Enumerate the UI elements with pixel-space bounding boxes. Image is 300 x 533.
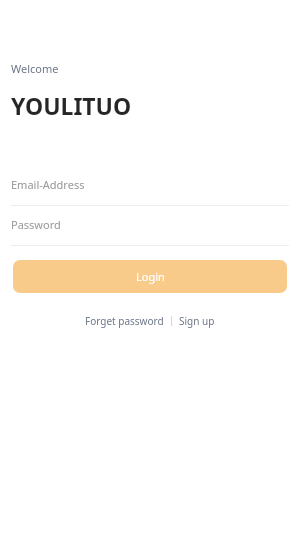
button[interactable]: Sign up: [179, 314, 215, 328]
button[interactable]: Forget password: [85, 314, 164, 328]
staticText: Sign up: [179, 314, 215, 328]
staticText: Welcome: [11, 61, 59, 76]
staticText: Login: [136, 269, 165, 284]
staticText: Forget password: [85, 314, 164, 328]
button[interactable]: Login: [13, 260, 287, 293]
staticText: Email-Address: [11, 177, 85, 192]
staticText: Password: [11, 217, 61, 232]
staticText: YOULITUO: [11, 90, 132, 121]
